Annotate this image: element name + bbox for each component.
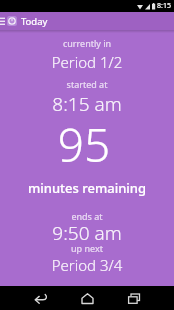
button[interactable]: Today: [0, 12, 174, 30]
staticText: Period 3/4: [0, 255, 174, 275]
staticText: 95: [0, 113, 171, 176]
staticText: started at: [0, 78, 174, 90]
button[interactable]: [64, 286, 111, 310]
staticText: Today: [21, 15, 48, 28]
staticText: minutes remaining: [0, 179, 174, 197]
button[interactable]: [111, 286, 158, 310]
staticText: 8:15 am: [0, 91, 174, 117]
staticText: 8:15: [157, 1, 171, 11]
staticText: 9:50 am: [0, 220, 174, 246]
staticText: currently in: [0, 37, 174, 49]
button[interactable]: [17, 286, 64, 310]
staticText: Period 1/2: [0, 52, 174, 72]
staticText: ends at: [0, 210, 174, 222]
staticText: up next: [0, 242, 174, 254]
